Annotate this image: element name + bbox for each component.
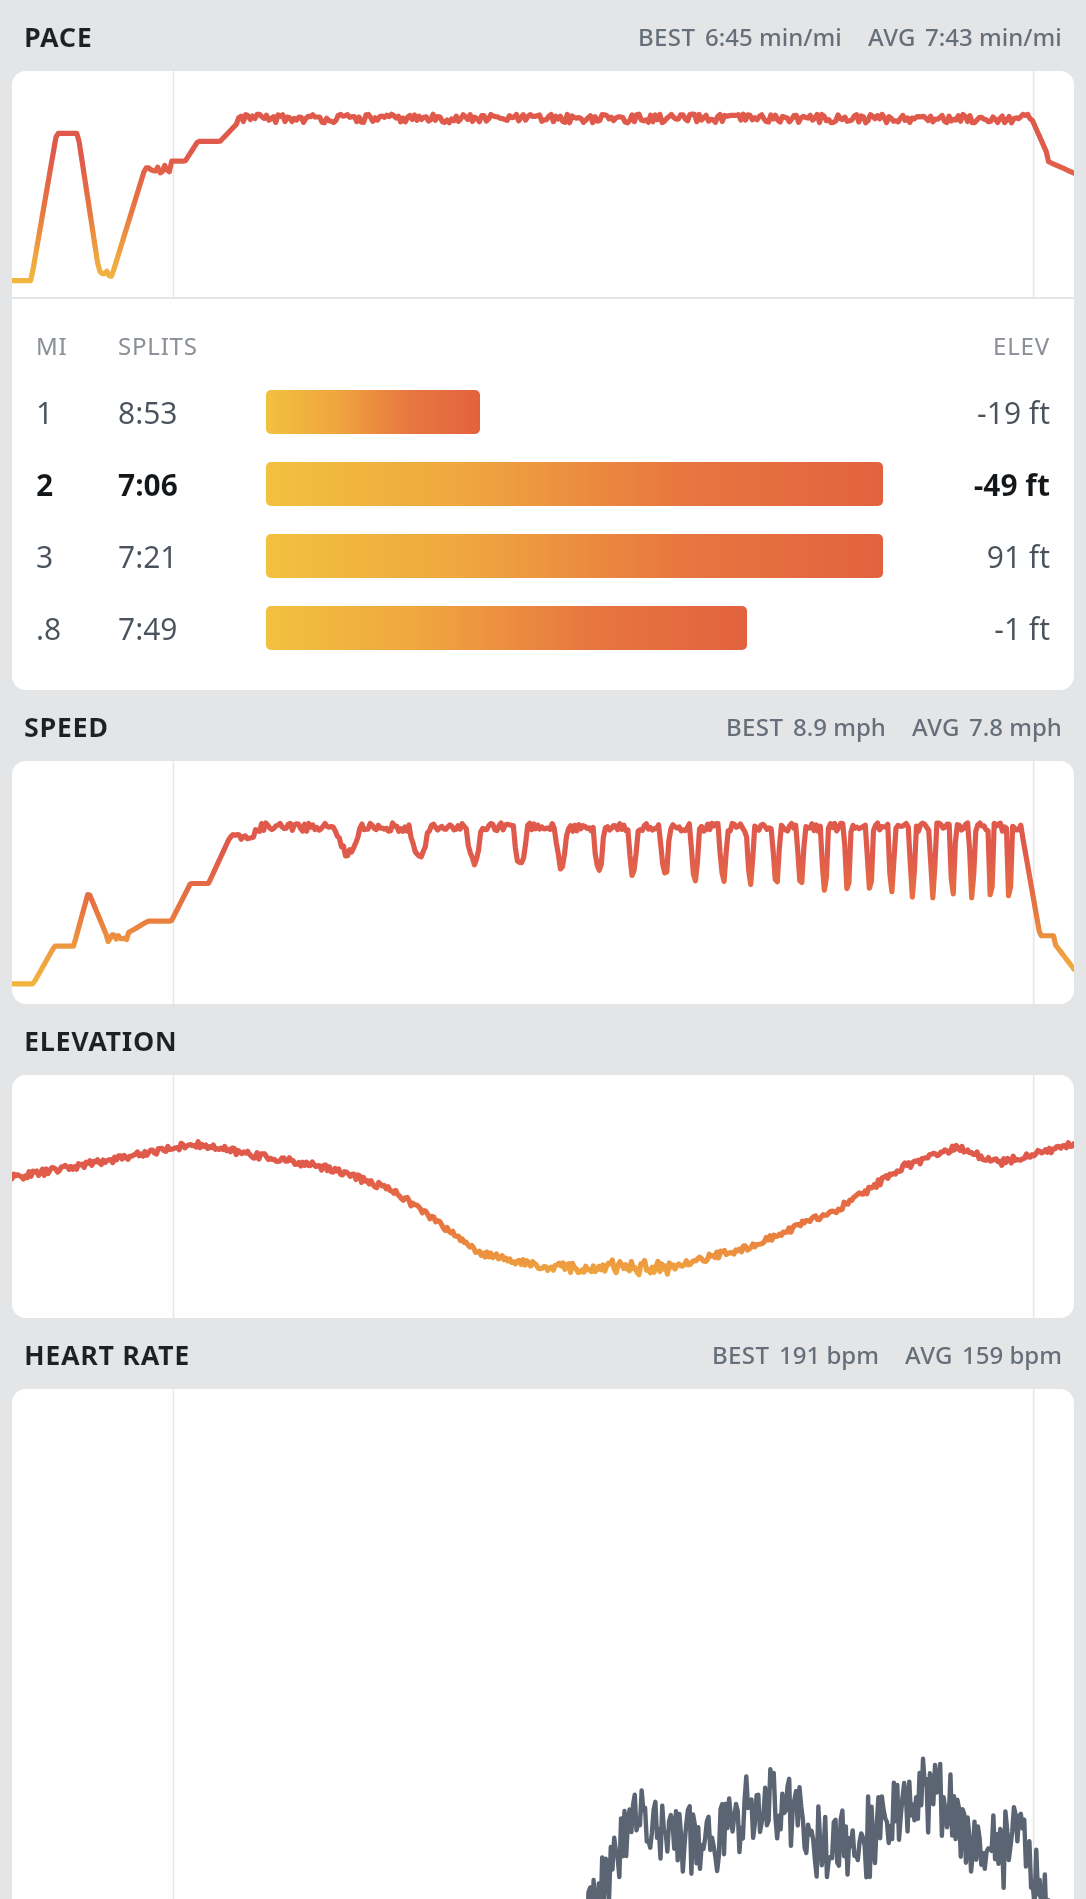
button[interactable]: PACE	[0, 0, 1086, 71]
staticText: 91 ft	[986, 536, 1050, 577]
staticText: PACE	[24, 18, 93, 55]
button[interactable]: ELEVATION	[0, 1004, 1086, 1075]
staticText: HEART RATE	[24, 1336, 190, 1373]
staticText: 7:06	[118, 464, 178, 505]
staticText: MI	[36, 329, 68, 362]
staticText: 159 bpm	[962, 1338, 1062, 1371]
button[interactable]: 1	[12, 376, 1074, 448]
staticText: 8:53	[118, 392, 178, 433]
button[interactable]	[12, 71, 1074, 297]
staticText: 7:49	[118, 608, 178, 649]
staticText: -19 ft	[977, 392, 1050, 433]
staticText: -49 ft	[973, 464, 1050, 505]
staticText: 7:21	[118, 536, 178, 577]
button[interactable]: HEART RATE	[0, 1318, 1086, 1389]
staticText: AVG	[912, 710, 960, 743]
staticText: ELEVATION	[24, 1022, 178, 1059]
staticText: BEST	[712, 1338, 770, 1371]
staticText: SPEED	[24, 708, 109, 745]
staticText: 3	[36, 536, 54, 577]
staticText: -1 ft	[994, 608, 1050, 649]
staticText: 8.9 mph	[793, 710, 886, 743]
button[interactable]	[12, 1075, 1074, 1318]
staticText: 7:43 min/mi	[925, 20, 1062, 53]
staticText: BEST	[638, 20, 696, 53]
button[interactable]	[12, 1389, 1074, 1899]
button[interactable]: SPEED	[0, 690, 1086, 761]
staticText: 6:45 min/mi	[705, 20, 842, 53]
staticText: .8	[36, 608, 62, 649]
staticText: BEST	[726, 710, 784, 743]
staticText: SPLITS	[118, 329, 198, 362]
staticText: 2	[36, 464, 54, 505]
staticText: 7.8 mph	[969, 710, 1062, 743]
button[interactable]: .8	[12, 592, 1074, 664]
button[interactable]	[12, 761, 1074, 1004]
staticText: AVG	[905, 1338, 953, 1371]
staticText: AVG	[868, 20, 916, 53]
staticText: 1	[36, 392, 54, 433]
staticText: 191 bpm	[779, 1338, 879, 1371]
button[interactable]: 2	[12, 448, 1074, 520]
button[interactable]: 3	[12, 520, 1074, 592]
staticText: ELEV	[993, 329, 1050, 362]
